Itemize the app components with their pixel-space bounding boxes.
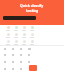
button[interactable] <box>28 32 36 39</box>
button[interactable] <box>17 46 25 52</box>
staticText: booking <box>26 9 39 13</box>
button[interactable] <box>20 39 28 45</box>
button[interactable] <box>17 65 25 72</box>
button[interactable] <box>17 58 25 65</box>
button[interactable] <box>4 32 12 39</box>
button[interactable] <box>28 39 36 45</box>
button[interactable] <box>9 58 17 65</box>
button[interactable] <box>12 39 20 45</box>
button[interactable] <box>9 65 17 72</box>
button[interactable] <box>1 58 9 65</box>
button[interactable] <box>1 46 9 52</box>
staticText: Quick classify <box>20 3 44 8</box>
button[interactable] <box>17 52 25 58</box>
button[interactable] <box>12 25 20 32</box>
button[interactable] <box>20 25 28 32</box>
button[interactable] <box>25 46 33 52</box>
button[interactable] <box>25 52 33 58</box>
button[interactable] <box>4 25 12 32</box>
button[interactable] <box>4 39 12 45</box>
button[interactable] <box>9 46 17 52</box>
button[interactable]: Confirm <box>29 65 37 71</box>
button[interactable] <box>28 25 36 32</box>
button[interactable] <box>20 32 28 39</box>
button[interactable] <box>1 65 9 72</box>
button[interactable] <box>9 52 17 58</box>
button[interactable] <box>1 52 9 58</box>
button[interactable] <box>25 58 33 65</box>
button[interactable] <box>25 65 33 72</box>
button[interactable] <box>12 32 20 39</box>
